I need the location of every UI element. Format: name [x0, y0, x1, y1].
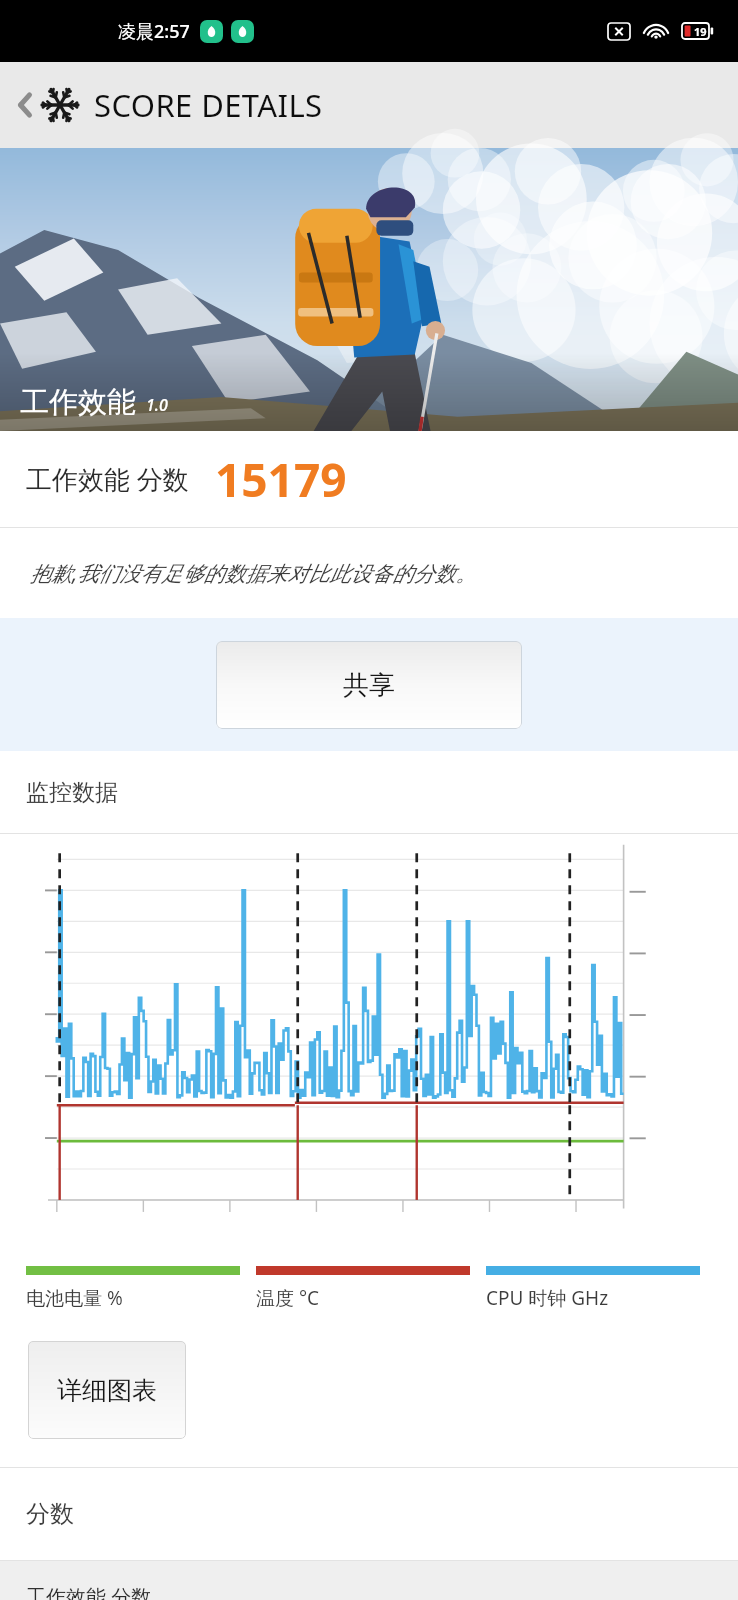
staticText: 监控数据 — [26, 778, 118, 807]
button[interactable]: Back — [8, 74, 331, 136]
button[interactable]: 共享 — [216, 641, 522, 729]
staticText: 凌晨2:57 — [118, 19, 190, 44]
staticText: 1.0 — [146, 394, 168, 416]
staticText: 工作效能 分数 — [26, 1583, 152, 1600]
staticText: 19 — [694, 24, 707, 39]
staticText: 电池电量 % — [26, 1285, 123, 1311]
staticText: SCORE DETAILS — [94, 84, 323, 126]
staticText: 工作效能 — [20, 384, 136, 421]
staticText: CPU 时钟 GHz — [486, 1285, 609, 1311]
staticText: 分数 — [26, 1499, 74, 1529]
staticText: 详细图表 — [57, 1375, 157, 1406]
staticText: 抱歉,我们没有足够的数据来对比此设备的分数。 — [30, 559, 477, 588]
staticText: 温度 °C — [256, 1285, 320, 1311]
staticText: 15179 — [215, 448, 347, 511]
staticText: 工作效能 分数 — [26, 461, 189, 497]
staticText: 共享 — [343, 669, 395, 702]
button[interactable]: 详细图表 — [28, 1341, 186, 1439]
